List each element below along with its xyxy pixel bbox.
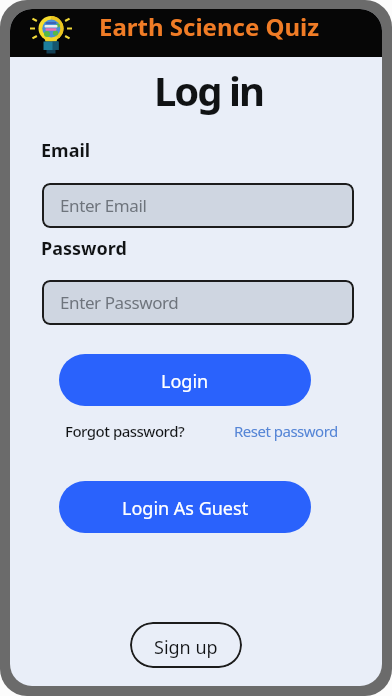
button[interactable]: Sign up bbox=[130, 622, 242, 668]
staticText: Login bbox=[161, 369, 209, 394]
button[interactable]: Enter Email bbox=[42, 183, 354, 228]
staticText: Log in bbox=[154, 63, 263, 117]
staticText: Sign up bbox=[154, 635, 218, 660]
button[interactable]: Reset password bbox=[230, 417, 342, 445]
staticText: Email bbox=[41, 138, 91, 163]
staticText: Earth Science Quiz bbox=[99, 10, 320, 43]
button[interactable]: Earth Science Quiz bbox=[10, 9, 382, 57]
staticText: Password bbox=[41, 236, 127, 261]
staticText: Forgot password? bbox=[65, 421, 185, 441]
button[interactable]: Login As Guest bbox=[59, 481, 311, 533]
staticText: Login As Guest bbox=[122, 496, 249, 521]
staticText: Enter Email bbox=[60, 194, 147, 217]
staticText: Reset password bbox=[234, 421, 338, 441]
staticText: Enter Password bbox=[60, 291, 179, 314]
button[interactable]: Login bbox=[59, 354, 311, 406]
button[interactable]: Enter Password bbox=[42, 280, 354, 325]
